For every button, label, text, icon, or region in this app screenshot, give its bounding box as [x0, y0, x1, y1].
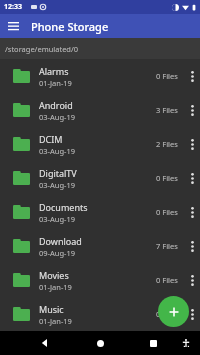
staticText: 12:33: [4, 2, 22, 12]
button[interactable]: Recent apps: [144, 334, 162, 352]
button[interactable]: Alarms: [0, 59, 200, 93]
staticText: 09-Aug-19: [39, 248, 76, 258]
staticText: 0 Files: [156, 207, 178, 217]
button[interactable]: /storage/emulated/0: [0, 38, 200, 59]
button[interactable]: More options for Alarms: [184, 61, 200, 91]
button[interactable]: Download: [0, 229, 200, 263]
staticText: Music: [39, 303, 64, 315]
button[interactable]: DCIM: [0, 127, 200, 161]
staticText: DCIM: [39, 133, 63, 145]
button[interactable]: Home: [91, 334, 109, 352]
button[interactable]: DigitalTV: [0, 161, 200, 195]
staticText: Alarms: [39, 65, 69, 77]
staticText: 01-Jan-19: [39, 78, 72, 88]
button[interactable]: Add: [158, 296, 189, 327]
staticText: Phone Storage: [31, 19, 109, 34]
button[interactable]: More options for DCIM: [184, 129, 200, 159]
button[interactable]: Documents: [0, 195, 200, 229]
staticText: /storage/emulated/0: [5, 44, 79, 54]
button[interactable]: More options for Android: [184, 95, 200, 125]
staticText: 03-Aug-19: [39, 112, 76, 122]
staticText: 0 Files: [156, 309, 178, 319]
staticText: 03-Aug-19: [39, 146, 76, 156]
button[interactable]: More options for Download: [184, 231, 200, 261]
staticText: 2 Files: [156, 139, 178, 149]
staticText: Documents: [39, 201, 88, 213]
staticText: Movies: [39, 269, 69, 281]
staticText: DigitalTV: [39, 167, 77, 179]
staticText: 0 Files: [156, 71, 178, 81]
staticText: Android: [39, 99, 73, 111]
button[interactable]: Back: [36, 334, 54, 352]
button[interactable]: More options for Music: [184, 299, 200, 329]
staticText: 01-Jan-19: [39, 282, 72, 292]
button[interactable]: Music: [0, 297, 200, 331]
button[interactable]: Accessibility: [178, 335, 194, 351]
staticText: 3 Files: [156, 105, 178, 115]
staticText: 0 Files: [156, 173, 178, 183]
staticText: 03-Aug-19: [39, 214, 76, 224]
staticText: Download: [39, 235, 82, 247]
button[interactable]: Open navigation menu: [4, 17, 22, 35]
button[interactable]: More options for Movies: [184, 265, 200, 295]
staticText: 7 Files: [156, 241, 178, 251]
button[interactable]: More options for DigitalTV: [184, 163, 200, 193]
button[interactable]: Movies: [0, 263, 200, 297]
staticText: 01-Jan-19: [39, 316, 72, 326]
button[interactable]: Android: [0, 93, 200, 127]
staticText: 0 Files: [156, 275, 178, 285]
staticText: 03-Aug-19: [39, 180, 76, 190]
button[interactable]: More options for Documents: [184, 197, 200, 227]
